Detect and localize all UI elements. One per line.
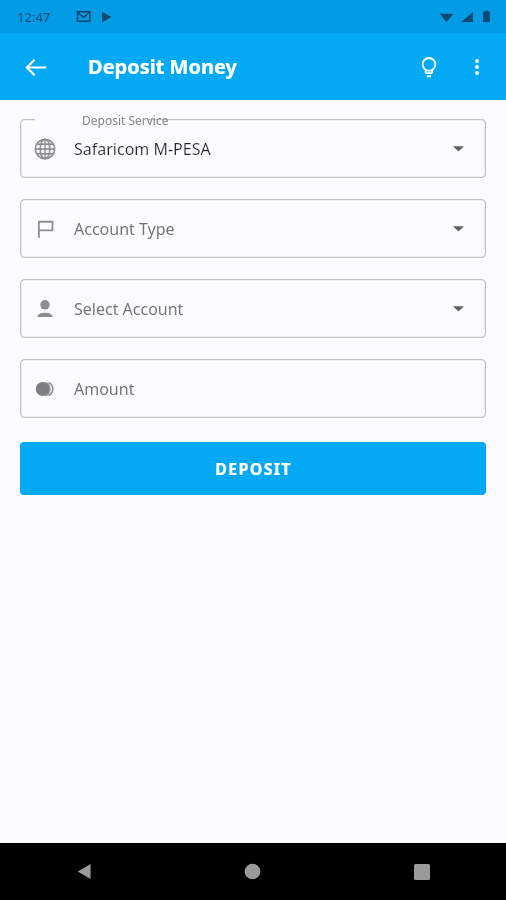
staticText: Safaricom M-PESA [74,138,211,160]
staticText: Account Type [74,218,175,240]
staticText: Select Account [74,298,184,320]
staticText: Deposit Money [88,53,237,80]
button[interactable]: Back [0,843,168,900]
button[interactable]: Recent apps [337,843,506,900]
button[interactable]: Account Type [20,199,486,258]
staticText: Amount [74,378,135,400]
button[interactable]: Select Account [20,279,486,338]
staticText: DEPOSIT [215,458,292,480]
button[interactable]: Back [12,43,60,91]
button[interactable]: Tips [405,43,453,91]
staticText: Deposit Service [82,112,169,128]
button[interactable]: Amount [20,359,486,418]
button[interactable]: Deposit Service [20,119,486,178]
button[interactable]: More options [453,43,501,91]
button[interactable]: Home [168,843,337,900]
button[interactable]: DEPOSIT [20,442,486,495]
staticText: 12:47 [17,8,51,26]
